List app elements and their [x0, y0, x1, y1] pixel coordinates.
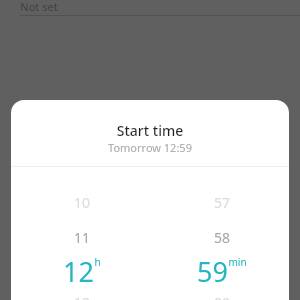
staticText: 59	[197, 253, 228, 290]
staticText: 10	[37, 193, 127, 212]
staticText: Start time	[11, 121, 289, 140]
button[interactable]: Minute picker	[177, 167, 267, 300]
staticText: 11	[37, 228, 127, 247]
staticText: 13	[37, 293, 127, 300]
staticText: 00	[177, 293, 267, 300]
button[interactable]: Not set	[0, 0, 300, 14]
button[interactable]: Hour picker	[37, 167, 127, 300]
staticText: h	[94, 255, 101, 269]
staticText: min	[228, 255, 247, 269]
staticText: 57	[177, 193, 267, 212]
staticText: 12	[63, 253, 94, 290]
staticText: Not set	[20, 0, 58, 14]
staticText: 58	[177, 228, 267, 247]
staticText: Tomorrow 12:59	[11, 140, 289, 155]
